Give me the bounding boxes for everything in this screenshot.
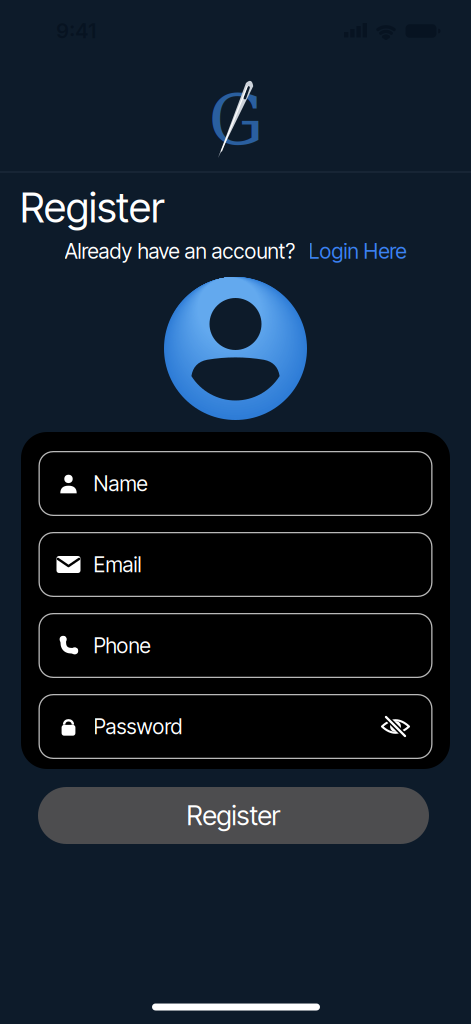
button[interactable]: Name bbox=[38, 451, 432, 516]
staticText: Password bbox=[93, 714, 182, 739]
staticText: Already have an account? bbox=[64, 238, 295, 264]
staticText: Name bbox=[93, 471, 147, 496]
button[interactable]: Show password bbox=[380, 714, 410, 738]
staticText: G bbox=[208, 80, 263, 161]
staticText: 9:41 bbox=[56, 18, 97, 43]
button[interactable]: Email bbox=[38, 532, 432, 597]
button[interactable]: Register bbox=[38, 787, 429, 844]
staticText: Phone bbox=[93, 633, 150, 658]
staticText: Register bbox=[20, 183, 164, 232]
staticText: Register bbox=[186, 799, 280, 832]
staticText: Email bbox=[93, 552, 141, 577]
button[interactable]: Login Here bbox=[308, 238, 406, 264]
button[interactable]: Password bbox=[38, 694, 432, 759]
staticText: Login Here bbox=[308, 238, 406, 264]
button[interactable]: Phone bbox=[38, 613, 432, 678]
